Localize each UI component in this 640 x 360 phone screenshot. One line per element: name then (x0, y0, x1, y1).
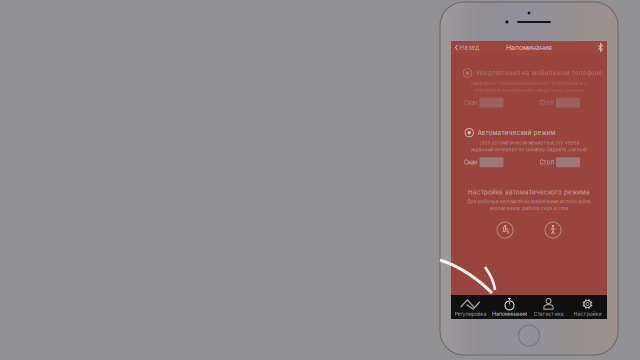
button[interactable]: Настройки (568, 295, 607, 319)
staticText: Стоп (539, 159, 553, 166)
staticText: Стоп (539, 99, 553, 106)
staticText: показывать уведомления, когда пора сдела… (474, 87, 584, 93)
staticText: Смартфон с приложением начнёт вибрироват… (470, 80, 587, 86)
button[interactable]: Скан (464, 98, 503, 108)
button[interactable]: Bluetooth (594, 41, 607, 54)
button[interactable]: Скан (464, 157, 503, 167)
staticText: Статистика (533, 310, 563, 317)
staticText: Настройка автоматического режима (468, 188, 590, 196)
button[interactable]: Стоп (539, 157, 580, 167)
button[interactable]: Стоп (539, 98, 580, 108)
staticText: Напоминания (492, 310, 527, 317)
staticText: Для работы в автоматическом режиме испол… (467, 199, 591, 204)
staticText: Уведомления на мобильном телефоне (476, 69, 603, 77)
staticText: Скан (464, 99, 477, 106)
staticText: Скан (464, 159, 477, 166)
staticText: кнопки внизу: работа сидя и стоя (489, 206, 568, 211)
button[interactable]: Режим сидя (497, 222, 513, 238)
staticText: заданный интервал по таймеру. Задайте, с… (470, 147, 587, 152)
staticText: Регулировка (454, 310, 486, 317)
button[interactable]: Режим стоя (545, 222, 561, 238)
button[interactable]: Назад (451, 41, 485, 54)
staticText: Автоматический режим (477, 129, 555, 136)
staticText: Стол автоматически меняет высоту через (479, 140, 578, 146)
button[interactable]: Уведомления на мобильном телефоне (451, 68, 607, 78)
button[interactable]: Автоматический режим (451, 128, 607, 138)
button[interactable]: Регулировка (451, 295, 490, 319)
button[interactable]: Напоминания (490, 295, 529, 319)
staticText: Напоминания (506, 43, 552, 52)
staticText: Настройки (573, 310, 601, 317)
staticText: Назад (459, 44, 479, 51)
button[interactable]: Статистика (529, 295, 568, 319)
